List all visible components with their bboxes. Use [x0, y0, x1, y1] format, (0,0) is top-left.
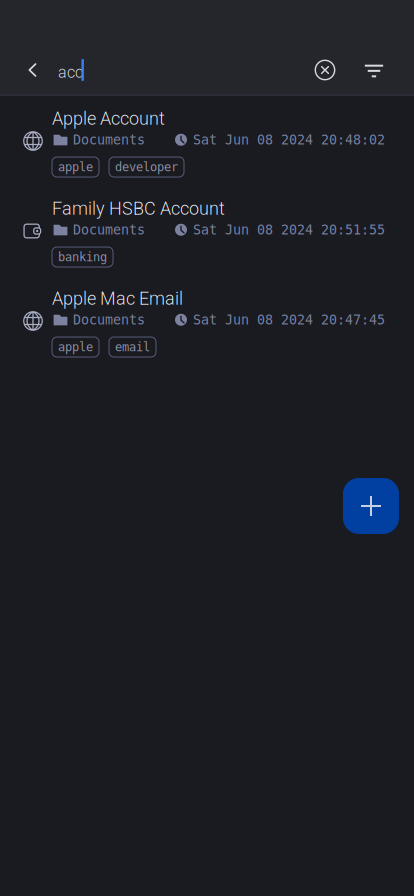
button[interactable]: Apple Account [0, 105, 414, 195]
staticText: acc [58, 63, 83, 82]
staticText: Sat Jun 08 2024 20:47:45 [193, 312, 385, 327]
staticText: Family HSBC Account [52, 198, 225, 219]
button[interactable]: Apple Mac Email [0, 285, 414, 375]
staticText: email [115, 340, 150, 354]
button[interactable]: Clear search [303, 48, 347, 92]
staticText: Documents [73, 312, 145, 327]
button[interactable]: Back [11, 48, 55, 92]
staticText: developer [115, 160, 178, 174]
staticText: Apple Account [52, 108, 165, 129]
staticText: Documents [73, 132, 145, 147]
staticText: Sat Jun 08 2024 20:48:02 [193, 132, 385, 147]
staticText: Sat Jun 08 2024 20:51:55 [193, 222, 385, 237]
staticText: Apple Mac Email [52, 288, 183, 309]
staticText: Documents [73, 222, 145, 237]
button[interactable]: Family HSBC Account [0, 195, 414, 285]
button[interactable]: Filter [352, 49, 396, 93]
button[interactable]: Add [343, 478, 399, 534]
staticText: apple [58, 340, 93, 354]
staticText: apple [58, 160, 93, 174]
staticText: banking [58, 250, 107, 264]
